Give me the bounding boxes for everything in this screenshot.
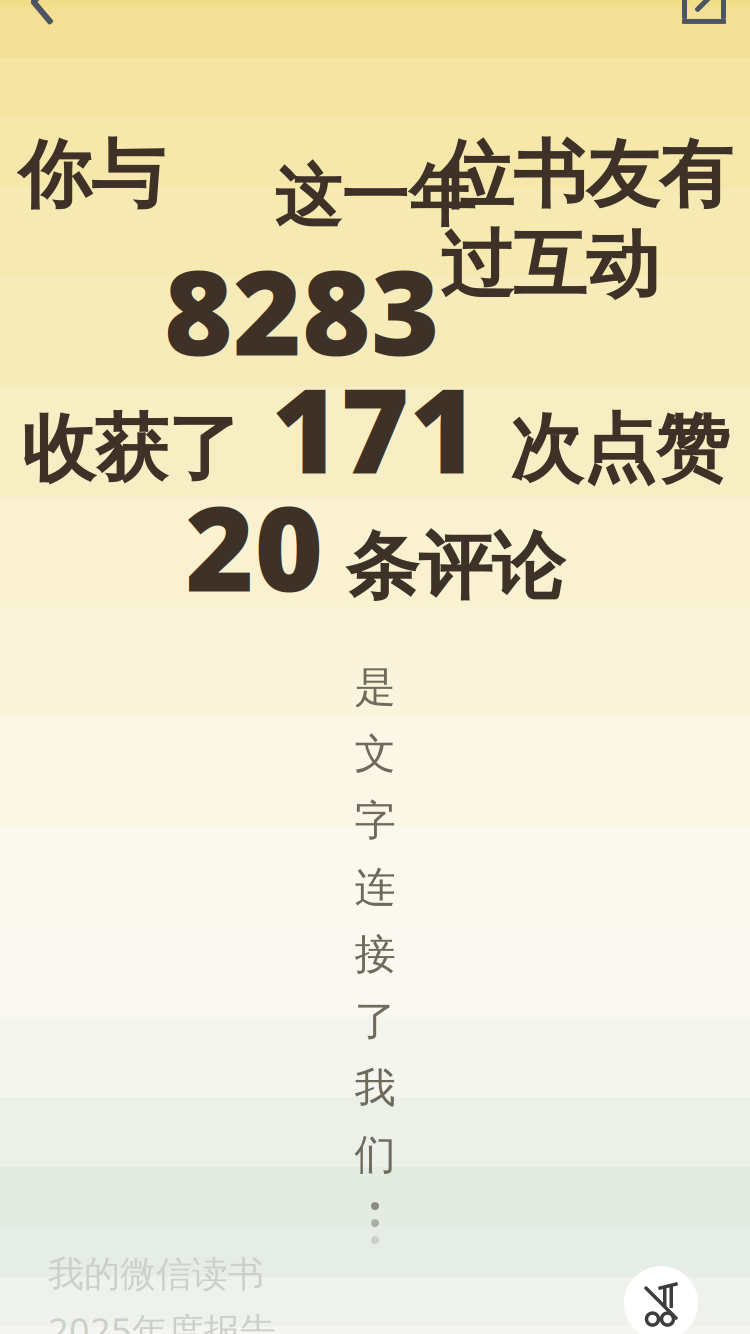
staticText: 2025年度报告 xyxy=(48,1306,276,1334)
button[interactable]: Mute music xyxy=(624,1266,698,1334)
staticText: 了 xyxy=(354,996,395,1047)
staticText: 们 xyxy=(354,1129,395,1180)
staticText: 接 xyxy=(354,929,395,980)
staticText: 连 xyxy=(354,862,395,913)
staticText: 位书友有过互动 xyxy=(440,130,732,310)
staticText: 是 xyxy=(354,662,395,713)
staticText: 文 xyxy=(354,729,395,779)
staticText: 条评论 xyxy=(323,522,564,612)
staticText: 我 xyxy=(354,1062,395,1113)
staticText: 次点赞 xyxy=(509,404,728,494)
staticText: 171 xyxy=(240,350,509,506)
staticText: 8283 xyxy=(164,76,440,544)
staticText: 20 xyxy=(185,468,323,624)
staticText: 你与 xyxy=(18,130,164,220)
button[interactable]: Back xyxy=(14,0,70,30)
staticText: 我的微信读书 xyxy=(48,1252,264,1296)
staticText: 这一年 xyxy=(274,156,475,238)
button[interactable]: Share xyxy=(672,0,736,34)
staticText: 收获了 xyxy=(21,404,240,494)
staticText: 字 xyxy=(354,795,395,846)
